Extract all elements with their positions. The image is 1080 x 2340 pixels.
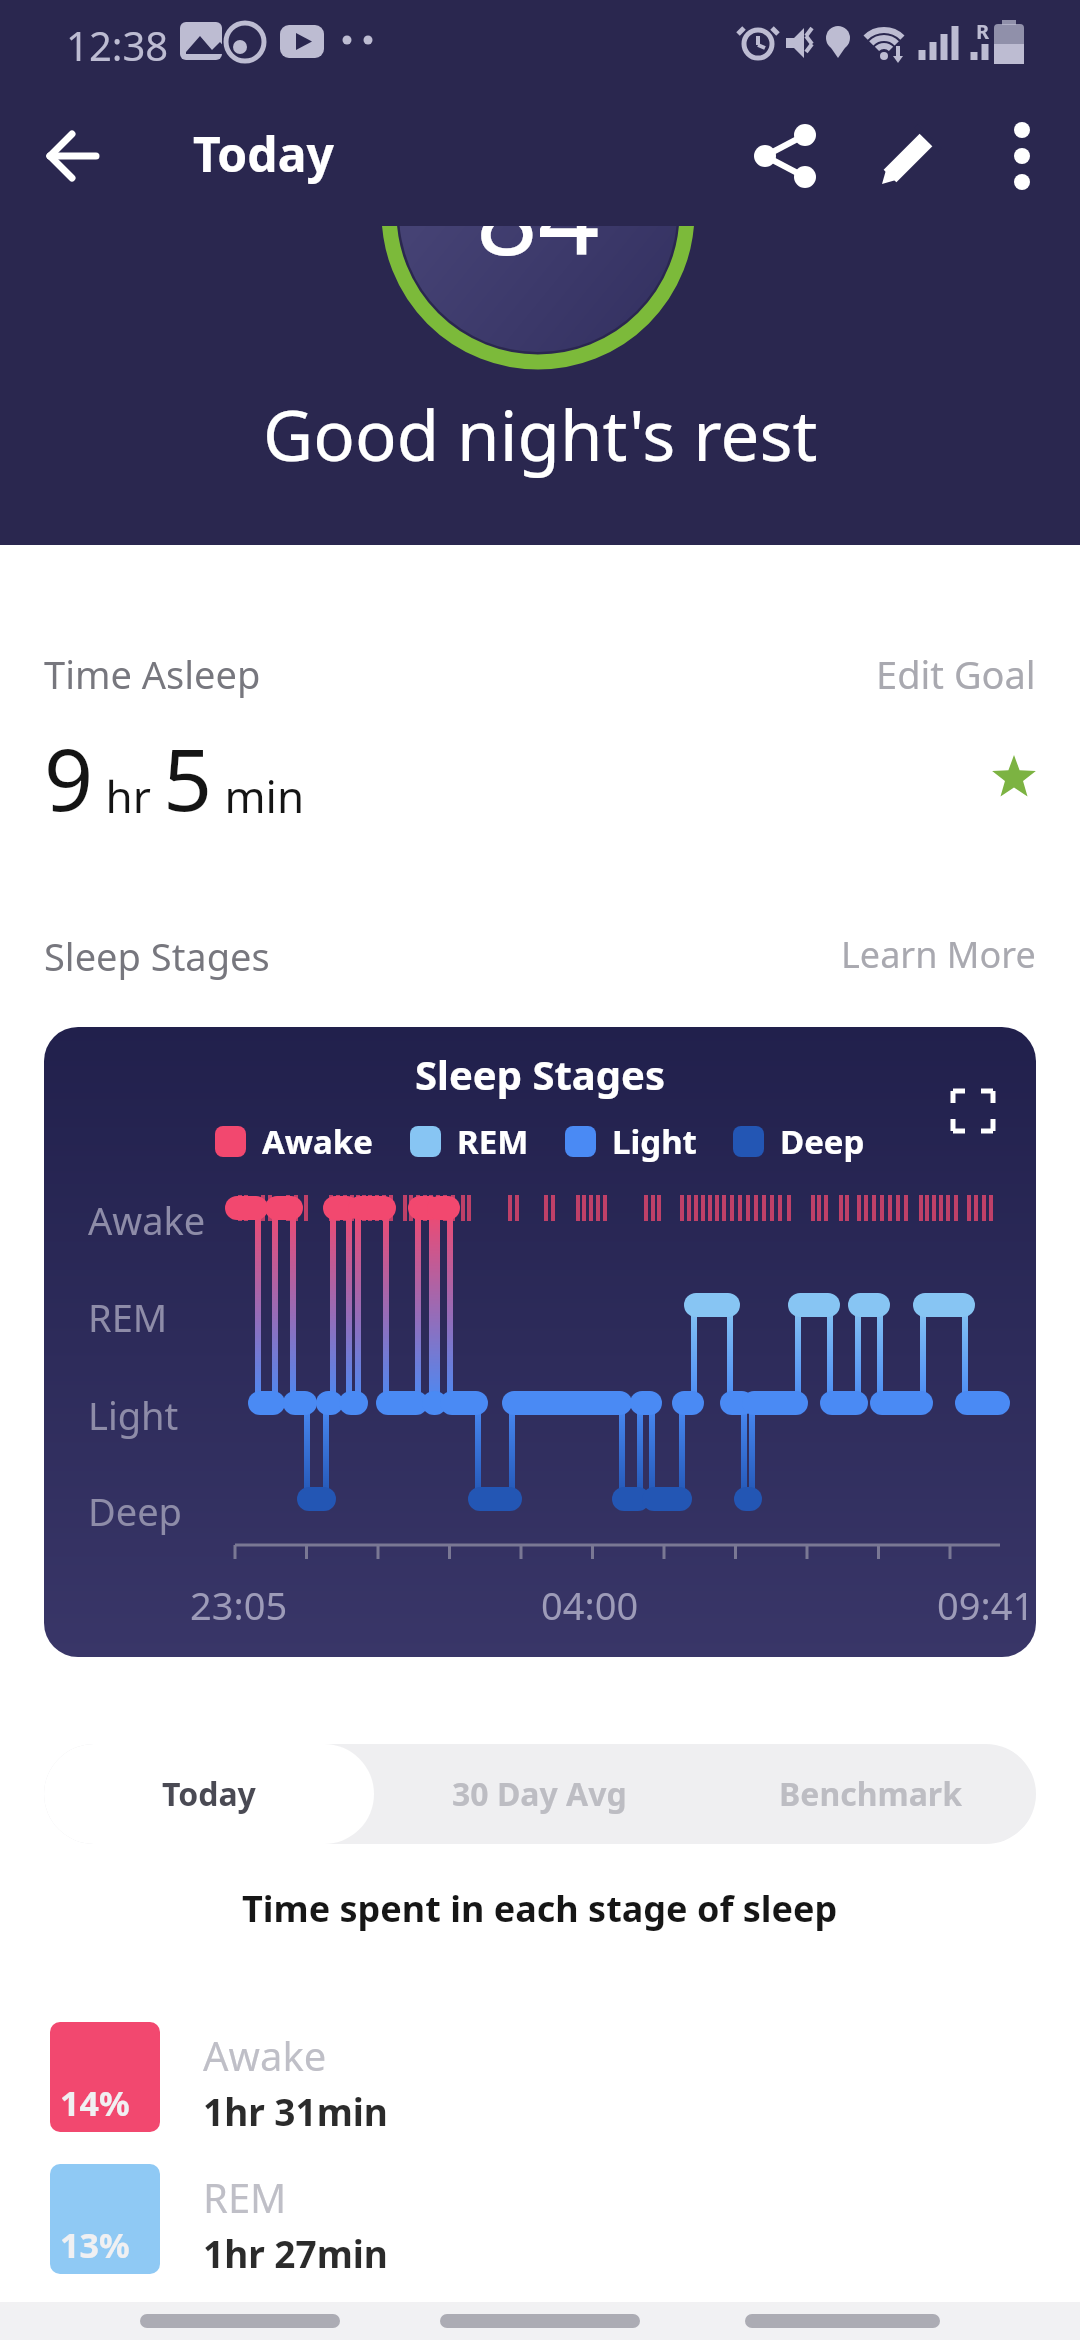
- staticText: 13%: [60, 2222, 130, 2268]
- staticText: Edit Goal: [876, 648, 1036, 700]
- button[interactable]: [951, 1089, 995, 1133]
- button[interactable]: Learn More: [841, 930, 1036, 979]
- staticText: Today: [193, 121, 334, 186]
- staticText: hr: [94, 766, 163, 826]
- staticText: Time Asleep: [44, 648, 261, 700]
- button[interactable]: Benchmark: [705, 1744, 1036, 1844]
- staticText: Light: [612, 1119, 697, 1164]
- staticText: 30 Day Avg: [452, 1772, 627, 1816]
- staticText: Time spent in each stage of sleep: [242, 1884, 838, 1933]
- staticText: Awake: [262, 1119, 374, 1164]
- button[interactable]: [140, 2314, 340, 2328]
- staticText: 9: [44, 719, 94, 836]
- button[interactable]: [40, 120, 112, 192]
- button[interactable]: [874, 120, 946, 192]
- staticText: R: [976, 18, 990, 45]
- staticText: 1hr 31min: [203, 2086, 388, 2136]
- staticText: 12:38: [66, 18, 169, 72]
- staticText: min: [213, 766, 305, 826]
- button[interactable]: [752, 120, 824, 192]
- button[interactable]: 30 Day Avg: [374, 1744, 705, 1844]
- staticText: Deep: [780, 1119, 865, 1164]
- staticText: Sleep Stages: [415, 1047, 665, 1101]
- button[interactable]: Edit Goal: [876, 648, 1036, 700]
- staticText: Benchmark: [779, 1772, 963, 1816]
- button[interactable]: [440, 2314, 640, 2328]
- staticText: REM: [457, 1119, 529, 1164]
- staticText: Sleep Stages: [44, 930, 270, 982]
- staticText: 14%: [60, 2080, 130, 2126]
- staticText: Today: [162, 1772, 256, 1816]
- staticText: Awake: [203, 2028, 327, 2082]
- button[interactable]: [986, 120, 1058, 192]
- button[interactable]: Today: [44, 1744, 374, 1844]
- button[interactable]: [745, 2314, 940, 2328]
- staticText: Good night's rest: [263, 387, 818, 481]
- staticText: 5: [163, 719, 213, 836]
- staticText: Learn More: [841, 930, 1036, 979]
- staticText: 1hr 27min: [203, 2228, 388, 2278]
- staticText: REM: [203, 2170, 287, 2224]
